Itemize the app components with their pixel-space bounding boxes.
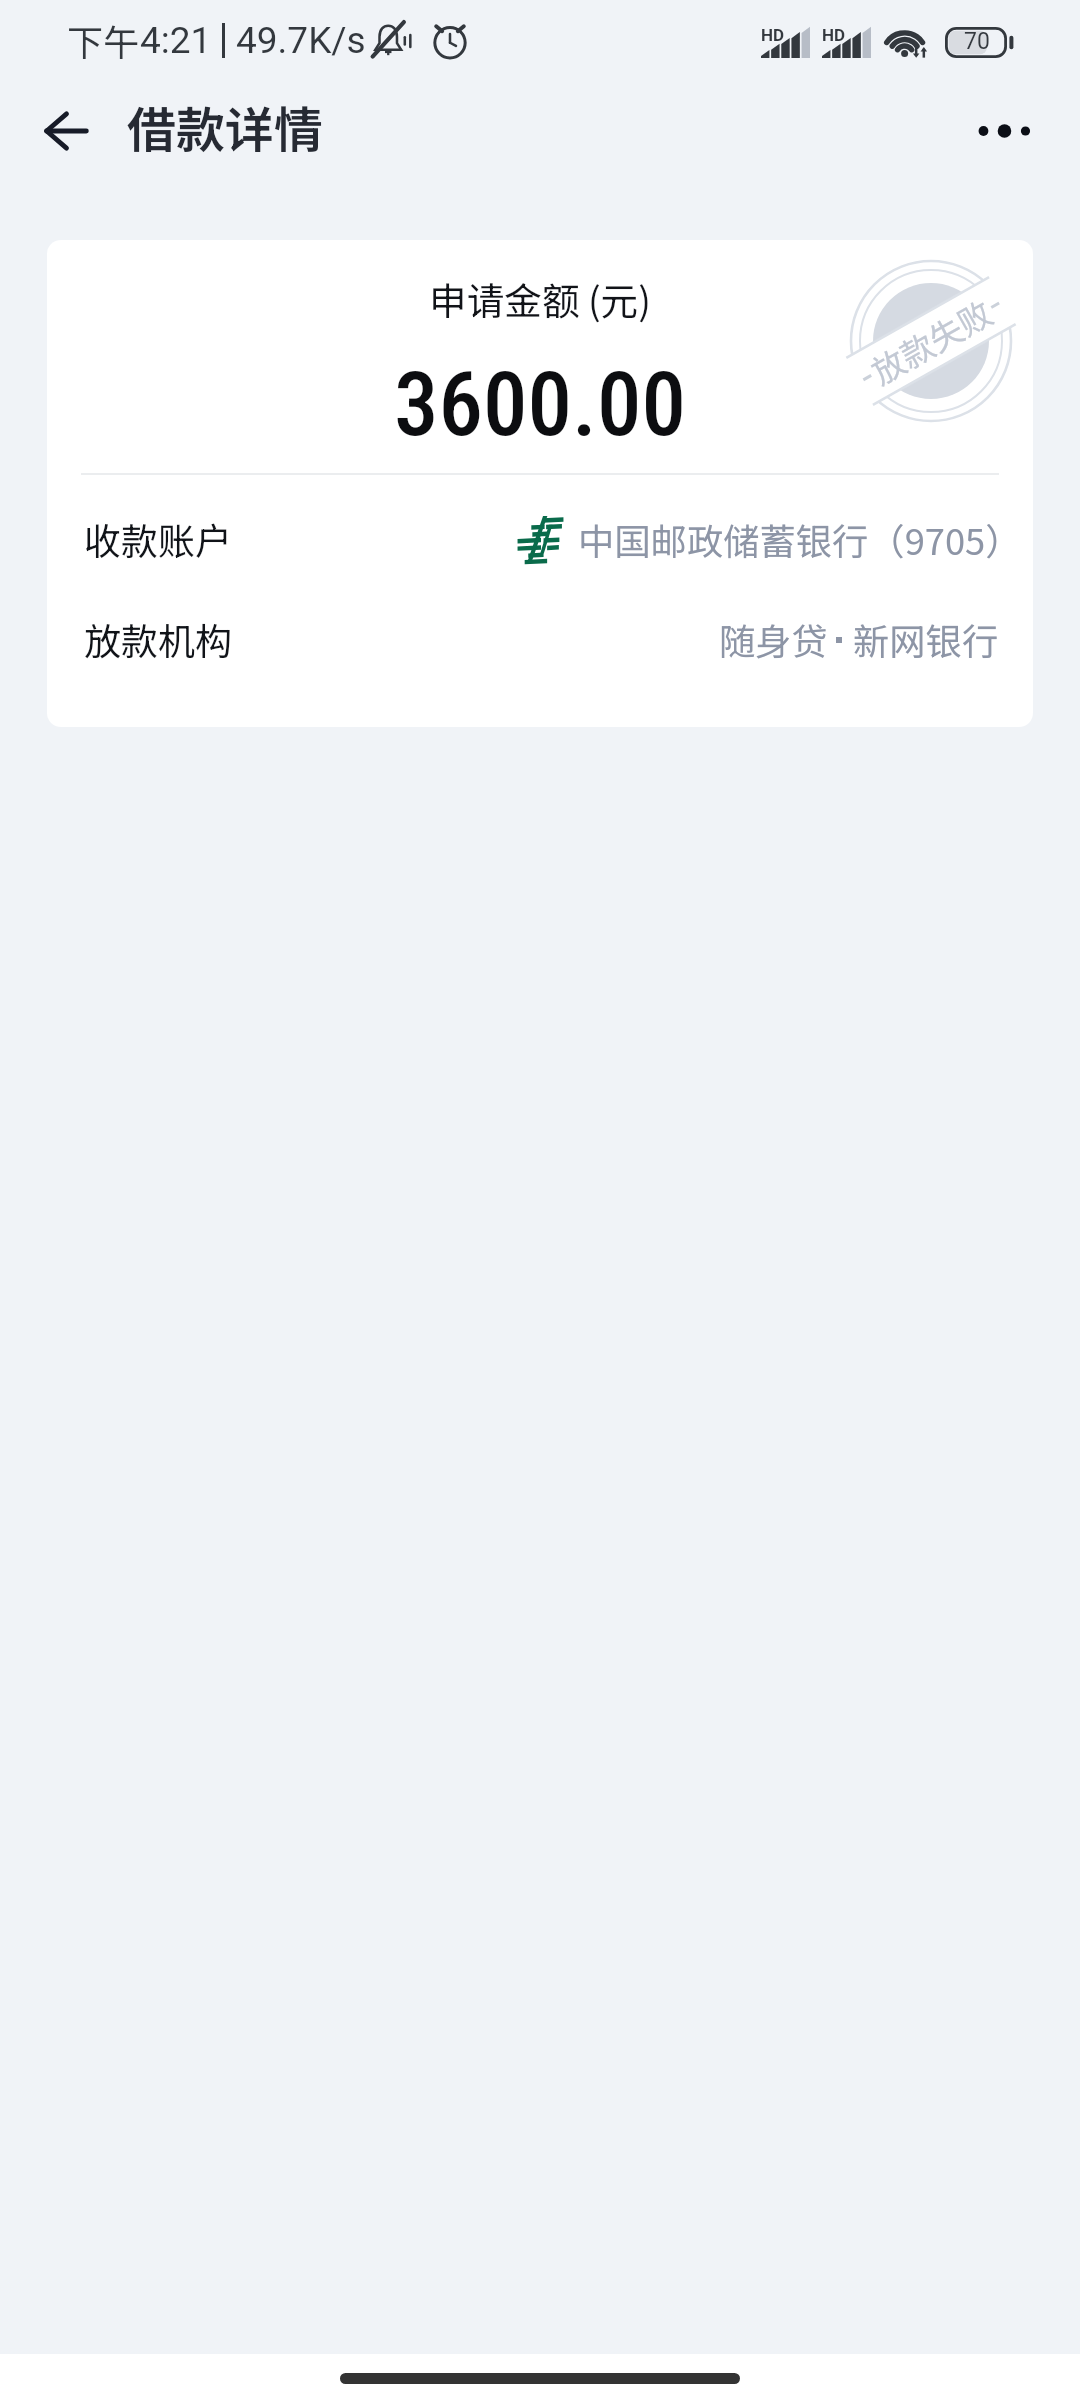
staticText: 49.7K/s — [236, 19, 366, 62]
button[interactable]: More options — [962, 82, 1052, 180]
staticText: 申请金额 (元) — [47, 271, 1033, 325]
button[interactable]: Back — [22, 82, 110, 180]
button[interactable]: 收款账户 — [84, 500, 996, 578]
staticText: 收款账户 — [84, 512, 232, 566]
staticText: 随身贷 — [719, 613, 828, 666]
staticText: 放款失败 — [862, 288, 1000, 394]
staticText: HD — [822, 25, 846, 45]
staticText: 70 — [964, 28, 990, 55]
staticText: 下午 — [67, 14, 140, 66]
staticText: 4:21 — [140, 19, 212, 62]
staticText: HD — [761, 25, 785, 45]
staticText: 3600.00 — [47, 352, 1033, 456]
staticText: 放款机构 — [84, 612, 232, 666]
staticText: 借款详情 — [127, 91, 324, 162]
staticText: 新网银行 — [853, 613, 999, 666]
staticText: 中国邮政储蓄银行（9705） — [578, 513, 1022, 566]
button[interactable]: 放款机构 — [84, 600, 996, 678]
